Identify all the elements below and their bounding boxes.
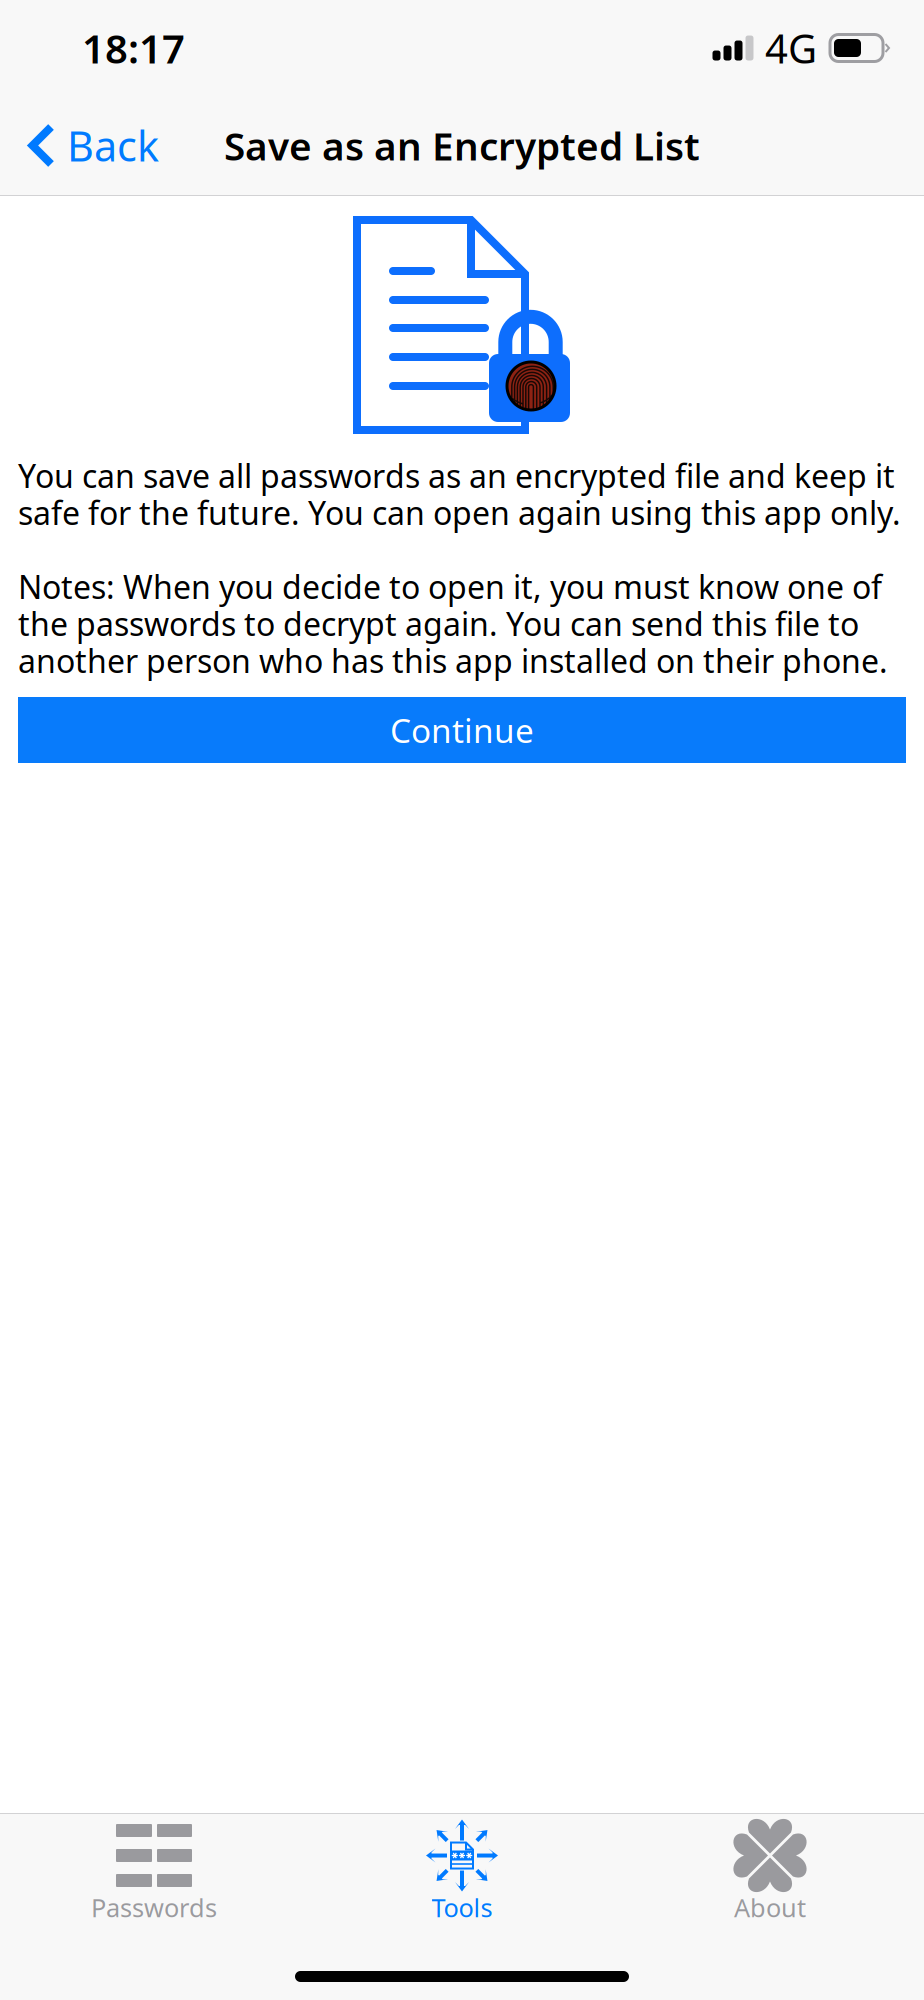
staticText: Back <box>67 118 159 173</box>
staticText: 4G <box>765 21 817 74</box>
staticText: 18:17 <box>82 21 185 74</box>
staticText: About <box>734 1891 806 1924</box>
staticText: Tools <box>431 1891 492 1924</box>
button[interactable]: Passwords <box>0 1817 308 1935</box>
staticText: another person who has this app installe… <box>18 639 888 682</box>
staticText: safe for the future. You can open again … <box>18 491 901 534</box>
staticText: Notes: When you decide to open it, you m… <box>18 565 882 608</box>
staticText: Continue <box>390 708 534 752</box>
button[interactable]: Tools <box>308 1817 616 1935</box>
staticText: Save as an Encrypted List <box>224 120 700 171</box>
staticText: You can save all passwords as an encrypt… <box>18 454 895 497</box>
button[interactable]: About <box>616 1817 924 1935</box>
staticText: the passwords to decrypt again. You can … <box>18 602 859 645</box>
button[interactable]: Continue <box>18 697 906 763</box>
staticText: Passwords <box>91 1891 217 1924</box>
button[interactable]: Back <box>0 97 173 193</box>
